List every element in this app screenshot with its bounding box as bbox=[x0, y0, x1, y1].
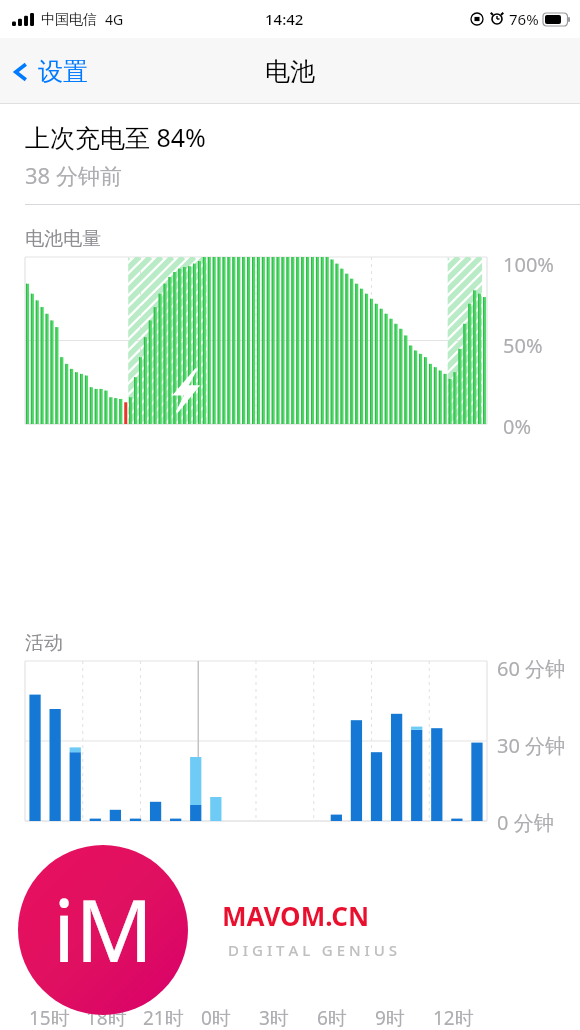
staticText: 30 分钟 bbox=[497, 732, 566, 759]
staticText: 活动 bbox=[25, 631, 63, 655]
staticText: 电池 bbox=[265, 56, 315, 87]
staticText: 0% bbox=[503, 413, 532, 440]
staticText: 18时 bbox=[86, 1005, 127, 1030]
staticText: 100% bbox=[503, 251, 554, 278]
staticText: 60 分钟 bbox=[497, 655, 566, 682]
staticText: 设置 bbox=[38, 56, 88, 87]
staticText: 38 分钟前 bbox=[25, 160, 122, 190]
staticText: 76% bbox=[509, 9, 539, 29]
staticText: 4G bbox=[105, 10, 124, 29]
staticText: MAVOM.CN bbox=[222, 898, 370, 933]
other: 返回 bbox=[10, 57, 32, 87]
staticText: 12时 bbox=[433, 1005, 474, 1030]
staticText: 0 分钟 bbox=[497, 809, 554, 836]
staticText: D I G I T A L G E N I U S bbox=[228, 940, 397, 960]
staticText: 上次充电至 84% bbox=[25, 120, 206, 154]
staticText: 15时 bbox=[29, 1005, 70, 1030]
button[interactable]: 返回 bbox=[10, 56, 88, 87]
staticText: iM bbox=[53, 870, 154, 987]
staticText: 21时 bbox=[143, 1005, 184, 1030]
staticText: 电池电量 bbox=[25, 227, 101, 251]
staticText: 50% bbox=[503, 332, 543, 359]
staticText: 14:42 bbox=[265, 9, 304, 29]
staticText: 3时 bbox=[259, 1005, 289, 1030]
staticText: 9时 bbox=[375, 1005, 405, 1030]
staticText: 中国电信 bbox=[41, 11, 97, 29]
staticText: 6时 bbox=[317, 1005, 347, 1030]
staticText: 0时 bbox=[201, 1005, 231, 1030]
